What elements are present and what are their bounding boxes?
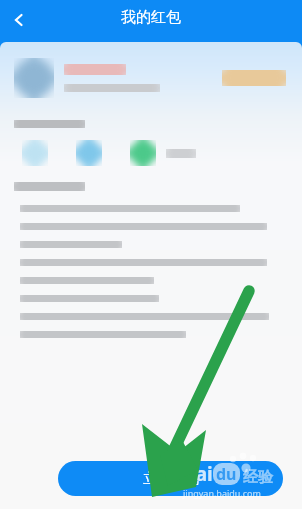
staticText: 我的红包	[121, 8, 181, 27]
button[interactable]: Back	[2, 0, 36, 40]
staticText: du	[216, 463, 237, 485]
staticText: Bai	[183, 461, 213, 487]
staticText: 立即提现	[143, 470, 199, 488]
staticText: jingyan.baidu.com	[183, 487, 261, 499]
button[interactable]: 立即提现	[58, 461, 283, 496]
staticText: 经验	[243, 468, 273, 487]
